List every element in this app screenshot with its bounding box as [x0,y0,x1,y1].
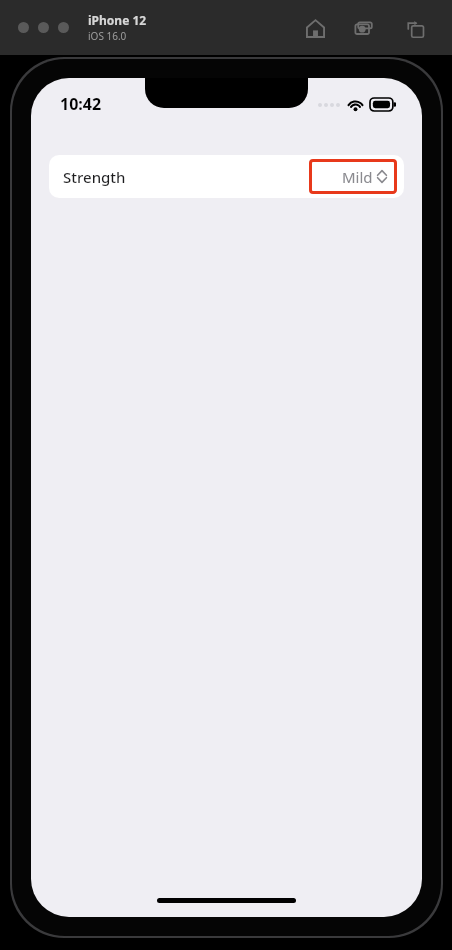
staticText: iOS 16.0 [88,29,127,43]
button[interactable] [58,22,69,33]
button[interactable] [38,22,49,33]
button[interactable]: Screenshot [348,11,382,45]
button[interactable] [18,22,29,33]
button[interactable]: Mild [309,159,397,194]
staticText: Strength [63,167,126,187]
button[interactable]: Rotate [398,11,432,45]
button[interactable]: Strength [49,155,404,198]
staticText: iPhone 12 [88,12,147,28]
staticText: 10:42 [60,93,102,115]
staticText: Mild [342,167,373,187]
button[interactable]: Home [298,11,332,45]
